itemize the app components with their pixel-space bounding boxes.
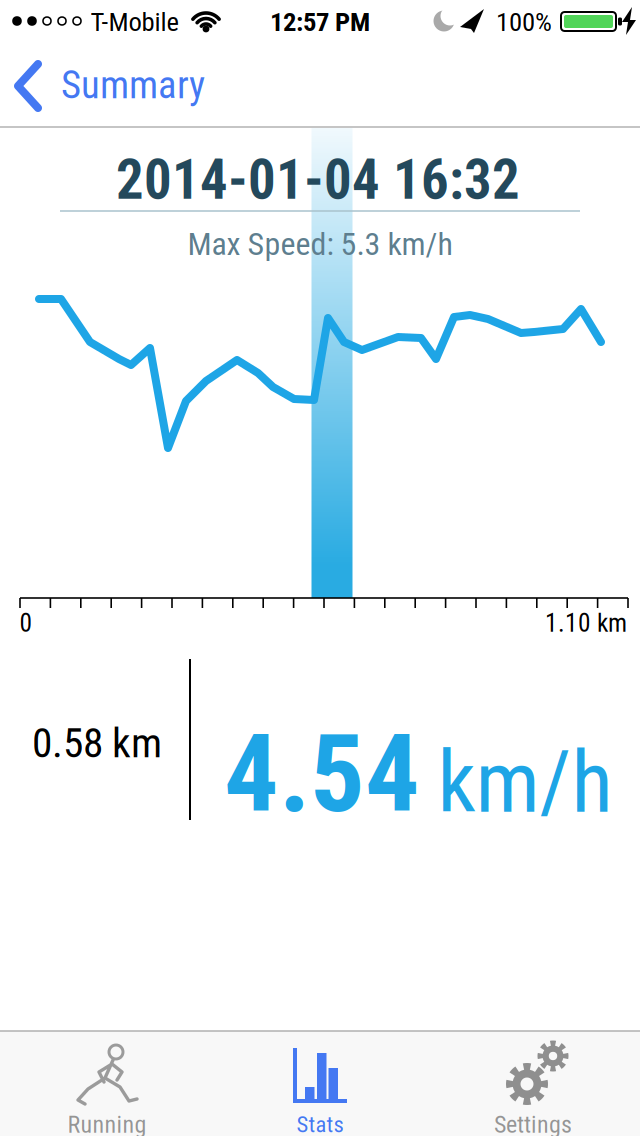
staticText: 4.54 [224,712,420,836]
staticText: 1.10 km [545,608,627,637]
staticText: Running [67,1111,146,1136]
staticText: Stats [296,1112,343,1136]
staticText: Settings [494,1111,572,1136]
button[interactable]: Running [0,1032,213,1136]
staticText: 12:57 PM [270,7,370,37]
staticText: km/h [437,733,612,831]
staticText: Max Speed: 5.3 km/h [187,226,452,262]
button[interactable]: Summary [10,56,240,116]
staticText: 100% [496,7,552,37]
staticText: 2014-01-04 16:32 [116,149,520,211]
staticText: Summary [61,63,205,107]
button[interactable]: Stats [213,1032,426,1136]
button[interactable]: Settings [426,1032,639,1136]
staticText: 0 [19,608,32,637]
staticText: T-Mobile [90,7,179,37]
staticText: 0.58 km [32,719,162,767]
